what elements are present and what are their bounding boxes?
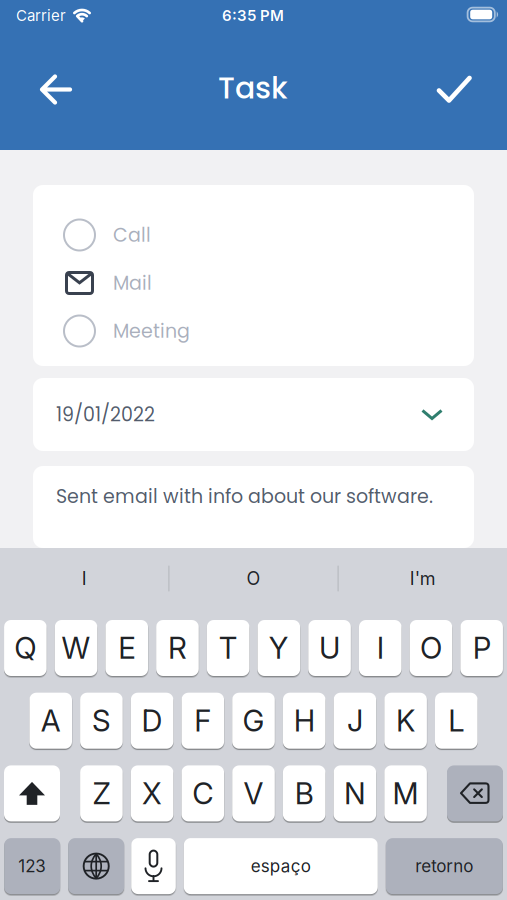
staticText: H — [294, 703, 315, 739]
button[interactable]: Sent email with info about our software. — [33, 466, 474, 548]
staticText: I — [377, 630, 384, 666]
button[interactable]: Numbers — [4, 838, 60, 894]
staticText: N — [344, 776, 366, 811]
staticText: Z — [92, 776, 110, 811]
button[interactable]: retorno — [386, 838, 503, 894]
button[interactable]: M — [384, 765, 427, 821]
button[interactable]: T — [207, 620, 249, 676]
button[interactable]: V — [232, 765, 275, 821]
staticText: A — [41, 703, 61, 739]
staticText: 6:35 PM — [222, 6, 284, 24]
button[interactable]: Done — [418, 63, 490, 116]
staticText: D — [142, 703, 163, 739]
staticText: L — [448, 703, 464, 739]
staticText: F — [194, 703, 211, 739]
button[interactable]: A — [29, 693, 72, 749]
staticText: T — [219, 630, 238, 666]
button[interactable]: Z — [80, 765, 123, 821]
button[interactable]: H — [283, 693, 325, 749]
staticText: P — [473, 630, 491, 666]
staticText: W — [61, 630, 90, 666]
staticText: R — [168, 630, 187, 666]
staticText: B — [295, 776, 314, 811]
button[interactable]: R — [156, 620, 199, 676]
staticText: espaço — [251, 856, 311, 876]
button[interactable]: S — [80, 693, 123, 749]
staticText: M — [393, 776, 419, 811]
staticText: Carrier — [16, 6, 66, 24]
button[interactable]: N — [334, 765, 376, 821]
button[interactable]: J — [334, 693, 376, 749]
button[interactable]: P — [460, 620, 503, 676]
staticText: S — [92, 703, 111, 739]
button[interactable]: Shift — [4, 765, 60, 821]
button[interactable]: Back — [22, 60, 90, 118]
staticText: Mail — [113, 270, 152, 296]
staticText: K — [396, 703, 415, 739]
button[interactable]: L — [435, 693, 478, 749]
button[interactable]: Next keyboard — [68, 838, 124, 894]
button[interactable]: O — [410, 620, 452, 676]
button[interactable]: Dictate — [131, 838, 176, 894]
button[interactable]: W — [55, 620, 97, 676]
button[interactable]: O — [169, 548, 337, 609]
button[interactable]: Mail — [63, 259, 474, 307]
button[interactable]: Call — [63, 211, 474, 259]
button[interactable]: B — [283, 765, 325, 821]
staticText: C — [192, 776, 213, 811]
staticText: E — [118, 630, 135, 666]
staticText: G — [242, 703, 264, 739]
button[interactable]: G — [232, 693, 275, 749]
button[interactable]: I — [359, 620, 401, 676]
staticText: U — [319, 630, 340, 666]
staticText: J — [347, 703, 363, 739]
staticText: Y — [269, 630, 289, 666]
button[interactable]: 19/01/2022 — [33, 378, 474, 451]
button[interactable]: I — [0, 548, 168, 609]
staticText: retorno — [415, 856, 473, 876]
staticText: Call — [113, 222, 151, 248]
staticText: Task — [218, 67, 288, 109]
button[interactable]: Y — [257, 620, 300, 676]
button[interactable]: K — [384, 693, 427, 749]
button[interactable]: C — [181, 765, 224, 821]
button[interactable]: espaço — [184, 838, 378, 894]
button[interactable]: Delete — [447, 765, 503, 821]
button[interactable]: U — [308, 620, 351, 676]
button[interactable]: X — [131, 765, 173, 821]
button[interactable]: I'm — [339, 548, 507, 609]
staticText: 123 — [18, 856, 46, 876]
staticText: I — [82, 568, 87, 589]
staticText: V — [243, 776, 263, 811]
staticText: Meeting — [113, 318, 190, 344]
staticText: I'm — [410, 568, 436, 589]
staticText: O — [420, 630, 442, 666]
button[interactable]: Meeting — [63, 307, 474, 355]
staticText: Q — [14, 630, 36, 666]
button[interactable]: E — [105, 620, 148, 676]
button[interactable]: Q — [4, 620, 47, 676]
staticText: X — [142, 776, 162, 811]
staticText: 19/01/2022 — [56, 401, 155, 428]
button[interactable]: D — [131, 693, 173, 749]
button[interactable]: F — [181, 693, 224, 749]
staticText: Sent email with info about our software. — [56, 483, 433, 510]
staticText: O — [246, 568, 260, 589]
